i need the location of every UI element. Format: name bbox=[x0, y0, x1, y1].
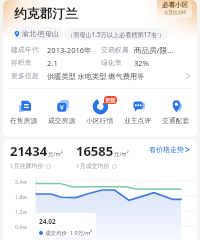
staticText: 2013-2016年 bbox=[47, 45, 92, 55]
button[interactable]: 成交房源 bbox=[43, 98, 81, 126]
staticText: 2.1 bbox=[47, 58, 58, 68]
staticText: 32% bbox=[134, 58, 149, 68]
button[interactable]: 在售房源 bbox=[5, 98, 43, 126]
button[interactable]: 更新 bbox=[81, 98, 119, 126]
staticText: 商品房/限... bbox=[134, 45, 174, 55]
staticText: 元/m² bbox=[48, 150, 63, 158]
staticText: 16585 bbox=[76, 142, 114, 160]
staticText: 在售房源 bbox=[10, 116, 38, 125]
staticText: 必看小区 bbox=[162, 1, 188, 9]
staticText: 交通配套 bbox=[162, 116, 190, 125]
staticText: 1月成交均价 bbox=[76, 162, 110, 170]
staticText: 业主点评 bbox=[124, 116, 152, 125]
staticText: 供暖类型 水电类型 燃气费用等 bbox=[47, 71, 145, 81]
staticText: 21434 bbox=[10, 142, 48, 160]
staticText: 1月挂牌均价 bbox=[10, 162, 44, 170]
staticText: 2.4w bbox=[15, 178, 28, 185]
staticText: 建成年代 bbox=[11, 45, 39, 54]
button[interactable]: （照母山1.5万以上必看榜第17名·） bbox=[64, 28, 168, 40]
staticText: 容积率 bbox=[11, 58, 32, 67]
staticText: 0.6w bbox=[15, 223, 28, 230]
staticText: 看价格走势 bbox=[149, 145, 184, 154]
staticText: 1.2w bbox=[15, 208, 28, 215]
button[interactable]: 必看小区 bbox=[157, 0, 192, 17]
button[interactable]: 业主点评 bbox=[119, 98, 157, 126]
staticText: （照母山1.5万以上必看榜第17名·） bbox=[67, 30, 165, 38]
staticText: 交易权属 bbox=[101, 45, 129, 54]
staticText: 更多信息 bbox=[11, 71, 39, 80]
staticText: 元/m² bbox=[114, 150, 129, 158]
staticText: 约克郡汀兰 bbox=[14, 6, 78, 22]
staticText: 成交均价 1.9万/m² bbox=[45, 229, 93, 237]
staticText: 1.8w bbox=[15, 193, 28, 200]
staticText: 绿化率 bbox=[101, 58, 122, 67]
staticText: 24.02 bbox=[39, 217, 56, 226]
staticText: 小区行情 bbox=[86, 116, 114, 125]
staticText: 成交房源 bbox=[48, 116, 76, 125]
button[interactable]: 看价格走势 bbox=[149, 142, 190, 154]
staticText: 渝北-照母山 bbox=[22, 29, 59, 38]
staticText: 实景找房榜 bbox=[164, 10, 187, 16]
button[interactable]: 渝北-照母山 bbox=[11, 27, 63, 40]
staticText: 更新 bbox=[105, 97, 116, 104]
button[interactable]: 交通配套 bbox=[157, 98, 195, 126]
